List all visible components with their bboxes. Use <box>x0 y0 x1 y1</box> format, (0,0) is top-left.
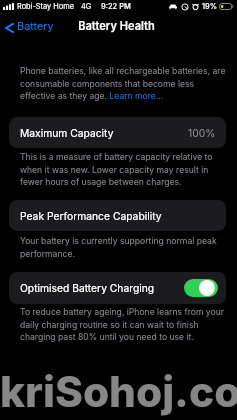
button[interactable]: Maximum Capacity <box>9 117 226 148</box>
staticText: Robi-Stay Home <box>17 2 74 11</box>
staticText: kriSohoj.co <box>0 366 237 417</box>
staticText: To reduce battery ageing, iPhone learns … <box>20 307 226 342</box>
staticText: Maximum Capacity <box>20 127 114 139</box>
staticText: Peak Performance Capability <box>20 210 162 222</box>
other: Car mode <box>169 3 177 10</box>
staticText: 19% <box>202 2 218 11</box>
other: Do not disturb <box>181 3 189 11</box>
button[interactable]: Peak Performance Capability <box>9 200 226 231</box>
staticText: This is a measure of battery capacity re… <box>20 152 226 187</box>
button[interactable]: Optimised Battery Charging <box>9 272 226 304</box>
staticText: 9:22 PM <box>101 2 131 11</box>
staticText: Phone batteries, like all rechargeable b… <box>20 66 226 101</box>
other: Alarm <box>192 3 199 10</box>
button[interactable]: Battery <box>1 18 59 36</box>
staticText: Your battery is currently supporting nor… <box>20 236 226 259</box>
staticText: Battery <box>17 19 54 32</box>
staticText: 4G <box>81 2 92 11</box>
other: Battery 19 percent <box>219 3 234 10</box>
button[interactable]: Optimised Battery Charging toggle <box>184 279 218 297</box>
staticText: Optimised Battery Charging <box>20 282 155 294</box>
staticText: 100% <box>188 127 216 139</box>
staticText: Battery Health <box>0 19 235 32</box>
